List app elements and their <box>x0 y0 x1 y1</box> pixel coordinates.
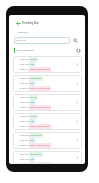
staticText: Profile Link <box>19 144 29 147</box>
staticText: jsmperable <box>30 77 42 80</box>
staticText: https://github.com/protocol <box>30 106 50 109</box>
staticText: https://github.com/jfbillow <box>30 125 50 128</box>
staticText: User <box>30 120 34 123</box>
staticText: List of Trending Developers <box>16 49 34 52</box>
staticText: Trending Developers <box>22 21 39 25</box>
staticText: protocol <box>30 96 37 99</box>
staticText: User Type <box>19 158 29 161</box>
button[interactable]: Back <box>14 18 22 28</box>
staticText: Profile Link <box>19 87 29 90</box>
button[interactable]: Username <box>13 56 82 73</box>
staticText: Profile Link <box>19 68 29 71</box>
staticText: User Type <box>19 120 29 123</box>
button[interactable]: Enter Username <box>14 37 70 44</box>
staticText: Profile Link <box>19 106 29 109</box>
button[interactable]: Username <box>13 113 82 130</box>
staticText: Username <box>19 96 29 99</box>
button[interactable]: Username <box>13 94 82 111</box>
staticText: https://github.com/jsmperable <box>30 87 50 90</box>
staticText: User <box>30 139 34 142</box>
staticText: jfbillow <box>30 115 37 118</box>
button[interactable]: Username <box>13 151 82 164</box>
staticText: https://github.com/jnsomethin <box>30 144 50 147</box>
staticText: Username <box>19 77 29 80</box>
staticText: User <box>30 158 34 161</box>
staticText: User Type <box>19 101 29 104</box>
button[interactable]: Username <box>13 75 82 92</box>
staticText: User Type <box>19 82 29 85</box>
staticText: Username <box>19 153 29 156</box>
staticText: User <box>30 63 34 66</box>
staticText: Username <box>19 115 29 118</box>
staticText: https://github.com/greenrobot <box>30 68 50 71</box>
staticText: User Type <box>19 139 29 142</box>
staticText: User <box>30 101 34 104</box>
staticText: User Type <box>19 63 29 66</box>
button[interactable]: Username <box>13 132 82 149</box>
button[interactable]: Refresh <box>75 47 82 53</box>
staticText: User <box>30 82 34 85</box>
staticText: Enter Username <box>16 39 26 42</box>
staticText: Search by username <box>18 31 29 34</box>
staticText: greenrobot <box>30 58 37 61</box>
staticText: Profile Link <box>19 125 29 128</box>
staticText: mikealbert <box>30 153 42 156</box>
button[interactable]: Search <box>70 36 80 45</box>
staticText: Username <box>19 134 29 137</box>
staticText: jnsomethin <box>30 134 42 137</box>
staticText: Username <box>19 58 29 61</box>
